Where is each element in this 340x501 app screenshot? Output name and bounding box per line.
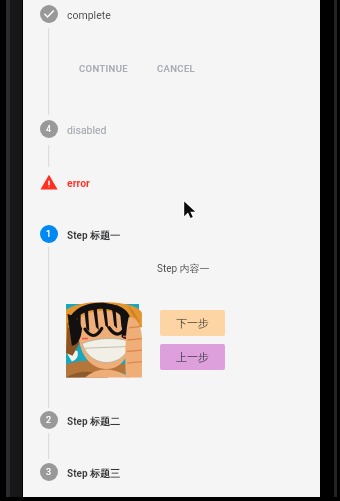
button[interactable]: 1 — [40, 225, 58, 243]
button[interactable]: CANCEL — [157, 63, 196, 74]
staticText: 2 — [46, 415, 52, 426]
button[interactable]: 3 — [40, 463, 58, 481]
staticText: CANCEL — [157, 63, 196, 74]
button[interactable]: complete step — [40, 5, 58, 23]
button[interactable]: Step 内容一 — [157, 262, 210, 275]
staticText: 下一步 — [176, 316, 209, 330]
button[interactable]: 4 — [40, 120, 58, 138]
button[interactable]: error step — [40, 174, 58, 192]
button[interactable]: disabled — [67, 124, 107, 136]
staticText: 3 — [46, 467, 52, 478]
staticText: 上一步 — [176, 350, 209, 364]
button[interactable]: 上一步 — [160, 344, 225, 370]
staticText: CONTINUE — [79, 63, 128, 74]
staticText: 4 — [46, 124, 52, 135]
button[interactable]: CONTINUE — [79, 63, 128, 74]
staticText: error — [67, 177, 90, 189]
button[interactable]: 2 — [40, 411, 58, 429]
staticText: complete — [67, 9, 111, 21]
button[interactable]: error — [67, 177, 90, 189]
button[interactable]: Step 标题一 — [67, 229, 121, 242]
staticText: 1 — [46, 229, 52, 240]
button[interactable]: Step 标题三 — [67, 467, 121, 480]
staticText: Step 内容一 — [157, 262, 210, 275]
staticText: Step 标题三 — [67, 467, 121, 480]
staticText: Step 标题二 — [67, 415, 121, 428]
button[interactable]: Step 标题二 — [67, 415, 121, 428]
staticText: disabled — [67, 124, 107, 136]
staticText: Step 标题一 — [67, 229, 121, 242]
button[interactable]: 下一步 — [160, 310, 225, 336]
button[interactable]: complete — [67, 9, 111, 21]
